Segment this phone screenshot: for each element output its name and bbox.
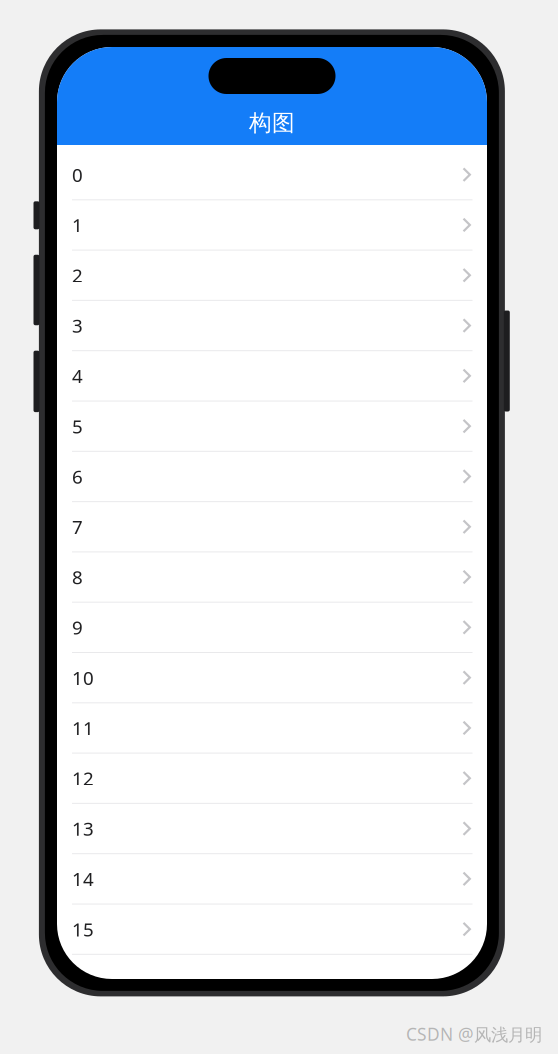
button[interactable]: 2 bbox=[57, 251, 487, 301]
staticText: 9 bbox=[72, 615, 83, 640]
staticText: 6 bbox=[72, 464, 83, 489]
button[interactable]: 12 bbox=[57, 754, 487, 804]
button[interactable]: 6 bbox=[57, 452, 487, 502]
button[interactable]: 3 bbox=[57, 301, 487, 351]
staticText: 15 bbox=[72, 917, 94, 942]
staticText: 14 bbox=[72, 866, 94, 891]
button[interactable]: 4 bbox=[57, 351, 487, 401]
staticText: 12 bbox=[72, 766, 94, 791]
button[interactable]: 1 bbox=[57, 200, 487, 251]
staticText: 8 bbox=[72, 565, 83, 589]
button[interactable]: 0 bbox=[57, 150, 487, 200]
staticText: 3 bbox=[72, 313, 83, 338]
button[interactable]: 5 bbox=[57, 401, 487, 452]
button[interactable]: 15 bbox=[57, 904, 487, 955]
button[interactable]: 13 bbox=[57, 804, 487, 854]
staticText: 2 bbox=[72, 263, 83, 288]
button[interactable]: 9 bbox=[57, 603, 487, 653]
staticText: CSDN @风浅月明 bbox=[406, 1022, 542, 1045]
staticText: 0 bbox=[72, 162, 83, 187]
staticText: 4 bbox=[72, 363, 83, 388]
staticText: 13 bbox=[72, 816, 94, 841]
staticText: 构图 bbox=[249, 109, 295, 137]
staticText: 11 bbox=[72, 716, 94, 740]
button[interactable]: 10 bbox=[57, 653, 487, 703]
button[interactable]: 14 bbox=[57, 854, 487, 904]
staticText: 10 bbox=[72, 665, 94, 690]
button[interactable]: 11 bbox=[57, 703, 487, 754]
staticText: 1 bbox=[72, 213, 83, 237]
staticText: 7 bbox=[72, 514, 83, 539]
staticText: 5 bbox=[72, 414, 83, 439]
button[interactable]: 7 bbox=[57, 502, 487, 552]
button[interactable]: 8 bbox=[57, 552, 487, 603]
